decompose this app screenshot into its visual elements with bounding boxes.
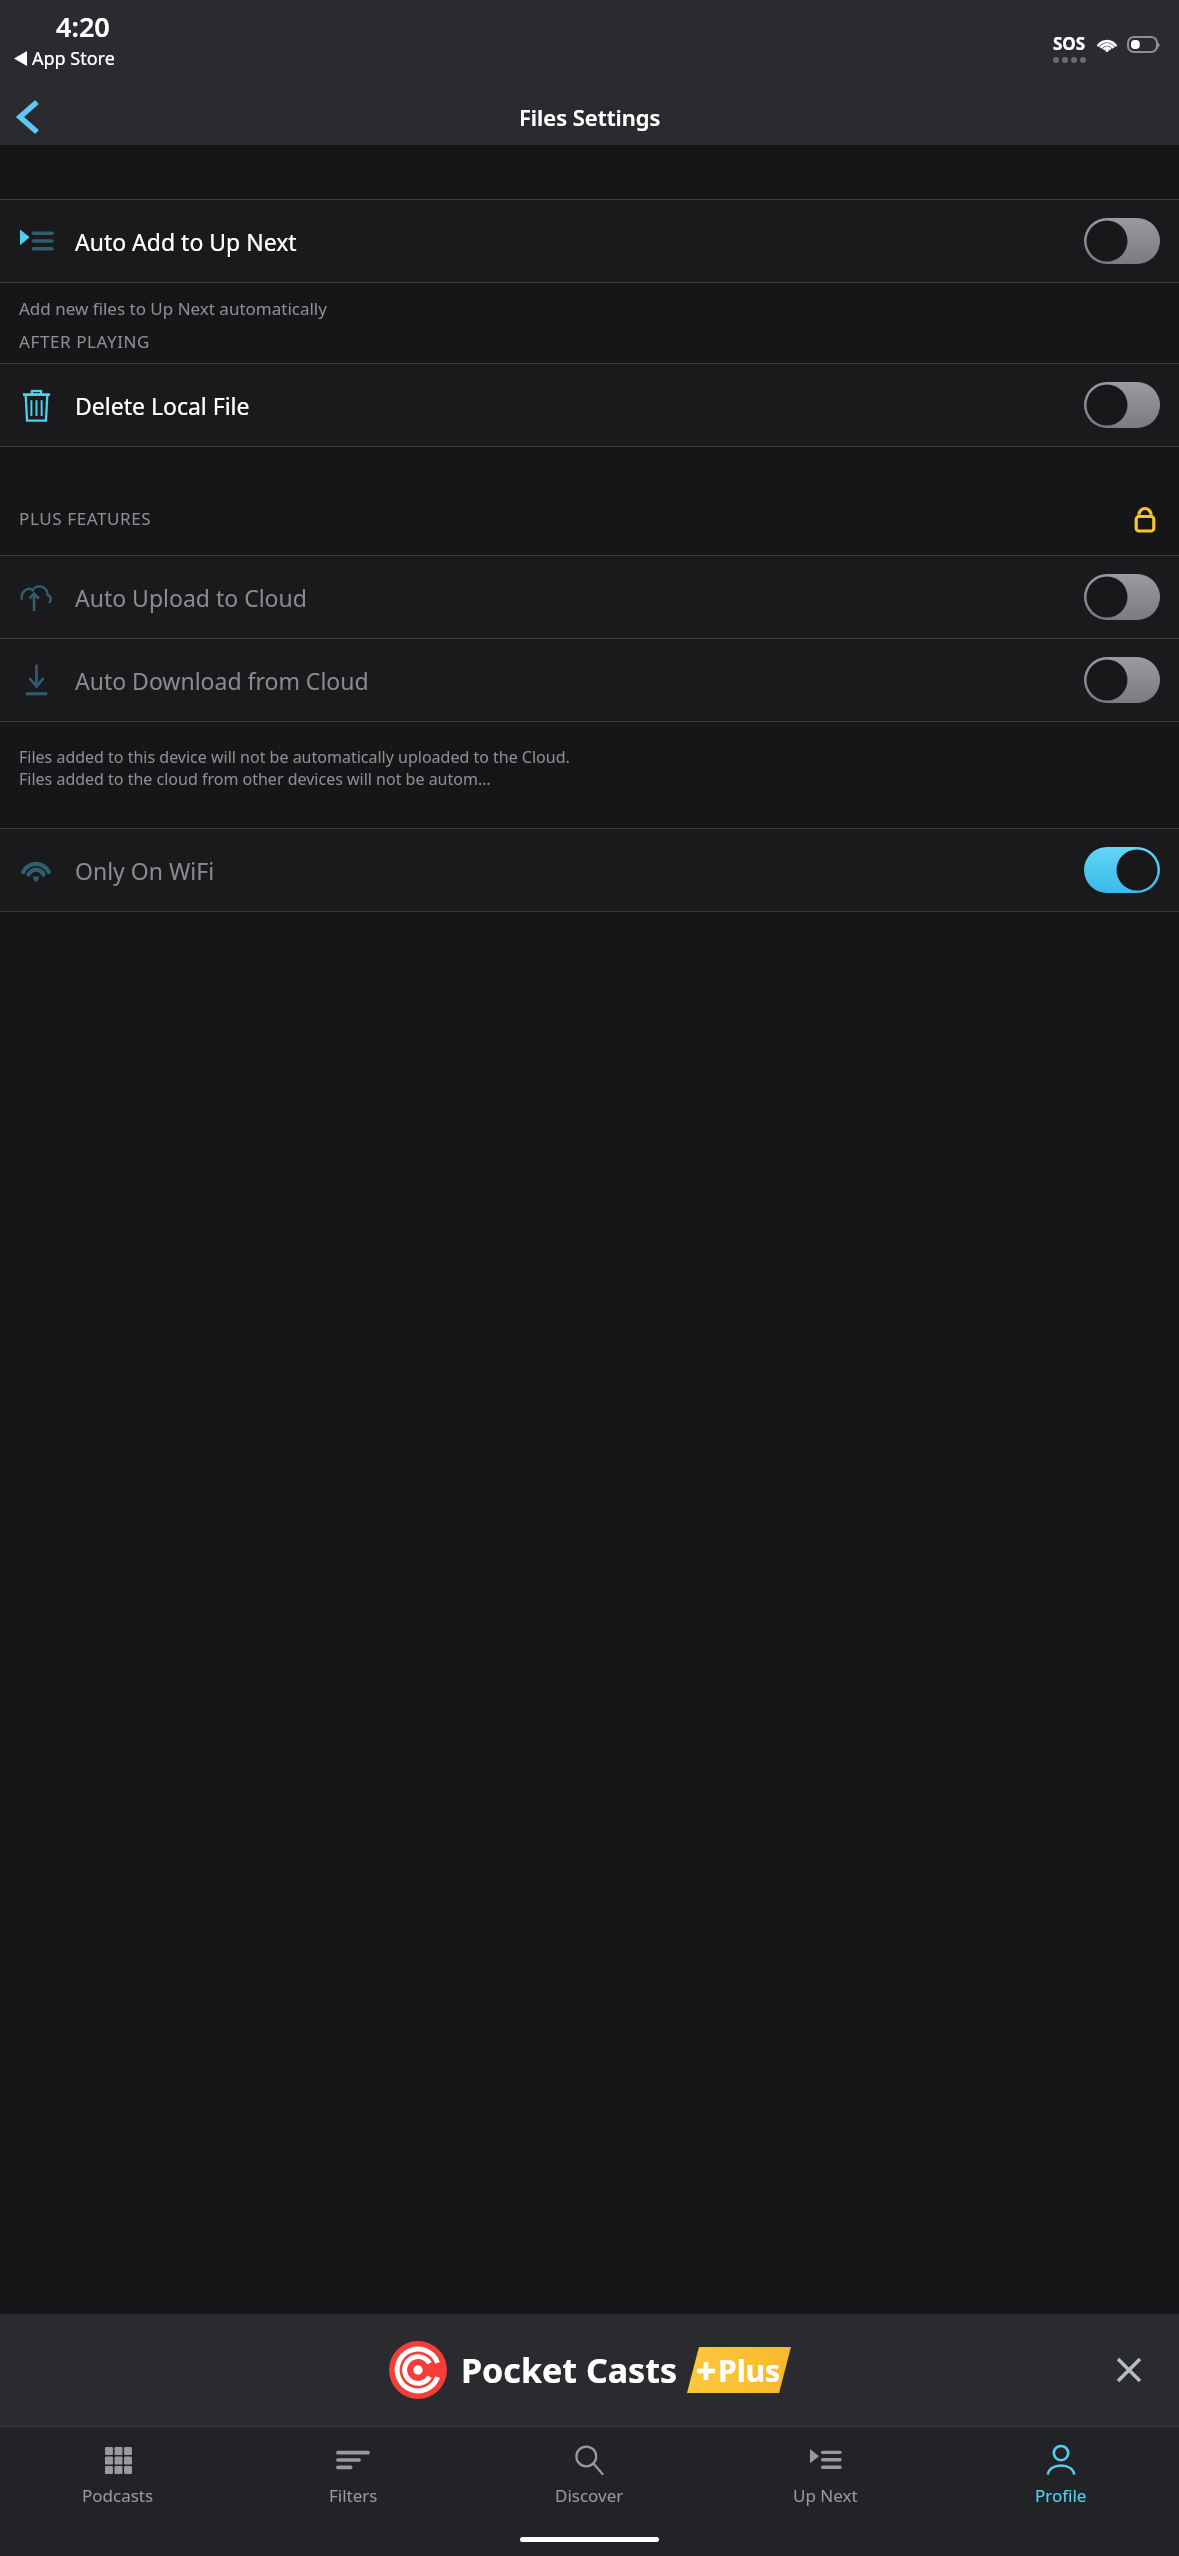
staticText: Profile <box>1035 2484 1087 2507</box>
button[interactable]: Podcasts <box>0 2427 235 2522</box>
staticText: Delete Local File <box>75 390 250 421</box>
button[interactable]: Off <box>1084 382 1160 428</box>
staticText: Files added to the cloud from other devi… <box>19 768 491 790</box>
staticText: Podcasts <box>82 2484 154 2507</box>
staticText: Only On WiFi <box>75 855 215 886</box>
staticText: Auto Add to Up Next <box>75 226 297 257</box>
button[interactable]: Only On WiFi <box>0 829 1179 911</box>
staticText: 4:20 <box>56 8 110 45</box>
button[interactable]: Filters <box>235 2427 471 2522</box>
staticText: PLUS FEATURES <box>19 507 152 530</box>
staticText: App Store <box>32 46 115 71</box>
button[interactable]: On <box>1084 847 1160 893</box>
staticText: Plus <box>718 2350 781 2391</box>
button[interactable]: Profile <box>943 2427 1179 2522</box>
button[interactable]: Auto Upload to Cloud <box>0 556 1179 638</box>
staticText: Discover <box>555 2484 624 2507</box>
staticText: Up Next <box>793 2484 858 2507</box>
button[interactable]: Auto Download from Cloud <box>0 639 1179 721</box>
button[interactable]: Off <box>1084 218 1160 264</box>
staticText: Pocket Casts <box>461 2347 677 2393</box>
staticText: Auto Download from Cloud <box>75 665 369 696</box>
button[interactable]: Off <box>1084 657 1160 703</box>
button[interactable]: Up Next <box>707 2427 943 2522</box>
button[interactable]: Discover <box>471 2427 707 2522</box>
staticText: AFTER PLAYING <box>19 330 151 353</box>
button[interactable]: Delete Local File <box>0 364 1179 446</box>
staticText: Files Settings <box>519 102 661 132</box>
staticText: Files added to this device will not be a… <box>19 746 570 768</box>
staticText: Auto Upload to Cloud <box>75 582 307 613</box>
staticText: Add new files to Up Next automatically <box>19 297 327 320</box>
button[interactable]: Off <box>1084 574 1160 620</box>
button[interactable]: Auto Add to Up Next <box>0 200 1179 282</box>
staticText: SOS <box>1053 32 1086 55</box>
button[interactable]: Plus locked <box>1130 503 1160 533</box>
button[interactable]: Close <box>1105 2346 1153 2394</box>
staticText: Filters <box>329 2484 378 2507</box>
button[interactable]: Pocket Casts <box>0 2314 1179 2426</box>
button[interactable]: Back <box>0 89 56 145</box>
